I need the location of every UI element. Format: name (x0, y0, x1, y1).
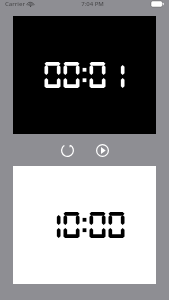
button[interactable] (13, 166, 156, 284)
staticText: 7:04 PM (81, 0, 104, 8)
staticText: Carrier (5, 0, 25, 8)
button[interactable] (13, 16, 156, 134)
button[interactable]: Reset (58, 141, 76, 159)
button[interactable]: Start (93, 141, 111, 159)
